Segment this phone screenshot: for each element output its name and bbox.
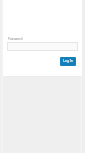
staticText: Password [8, 37, 23, 41]
button[interactable]: Password field [7, 42, 78, 51]
button[interactable]: Log In [60, 57, 76, 66]
staticText: Log In [63, 59, 73, 63]
